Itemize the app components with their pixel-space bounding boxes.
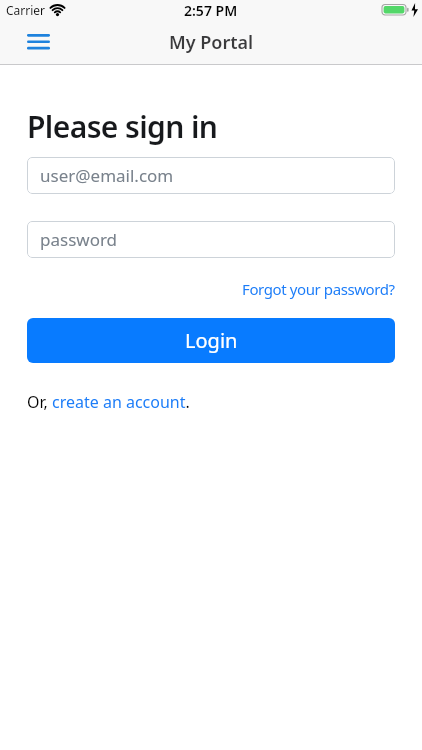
button[interactable]: Or, create an account. bbox=[27, 391, 190, 413]
staticText: My Portal bbox=[169, 30, 254, 55]
staticText: Please sign in bbox=[27, 106, 218, 147]
button[interactable]: user@email.com bbox=[27, 157, 395, 194]
button[interactable] bbox=[27, 34, 50, 50]
staticText: Login bbox=[185, 327, 238, 354]
staticText: 2:57 PM bbox=[184, 1, 238, 20]
button[interactable]: password bbox=[27, 221, 395, 258]
staticText: Carrier bbox=[6, 2, 46, 18]
staticText: password bbox=[40, 228, 118, 251]
button[interactable]: Forgot your password? bbox=[242, 279, 395, 299]
staticText: user@email.com bbox=[40, 164, 174, 187]
button[interactable]: Login bbox=[27, 318, 395, 363]
